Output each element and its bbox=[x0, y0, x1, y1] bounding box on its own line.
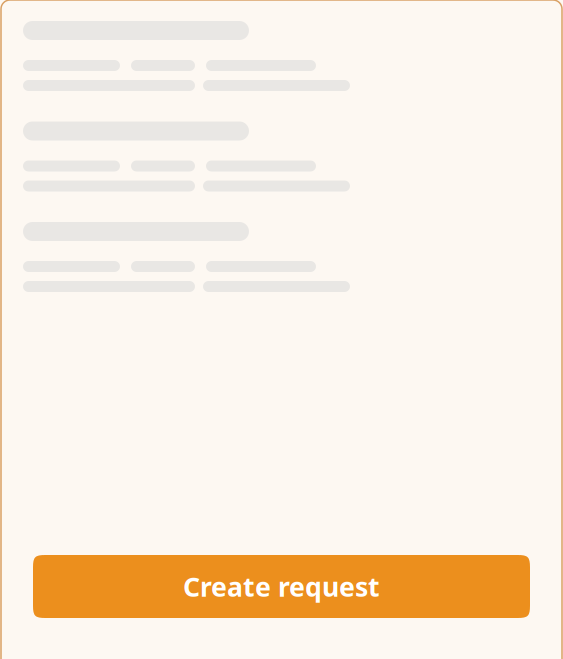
button[interactable]: Create request bbox=[33, 555, 530, 618]
staticText: Create request bbox=[183, 569, 380, 604]
